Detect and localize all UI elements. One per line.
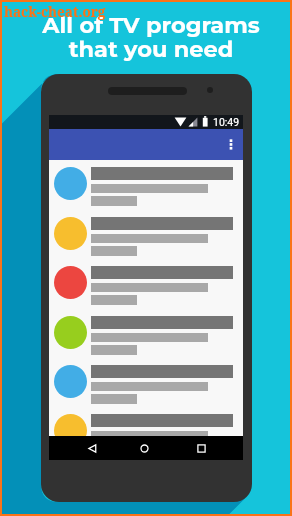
- button[interactable]: Home: [129, 436, 159, 460]
- button[interactable]: Back: [77, 436, 107, 460]
- button[interactable]: Recent apps: [186, 436, 216, 460]
- button[interactable]: [49, 414, 243, 457]
- button[interactable]: [49, 167, 243, 210]
- staticText: hack-cheat.org: [4, 3, 106, 21]
- staticText: All of TV programs that you need: [5, 11, 292, 62]
- button[interactable]: More options: [222, 137, 238, 153]
- button[interactable]: [49, 316, 243, 359]
- staticText: 10:49: [213, 116, 240, 128]
- button[interactable]: [49, 365, 243, 408]
- button[interactable]: [49, 217, 243, 260]
- button[interactable]: [49, 266, 243, 309]
